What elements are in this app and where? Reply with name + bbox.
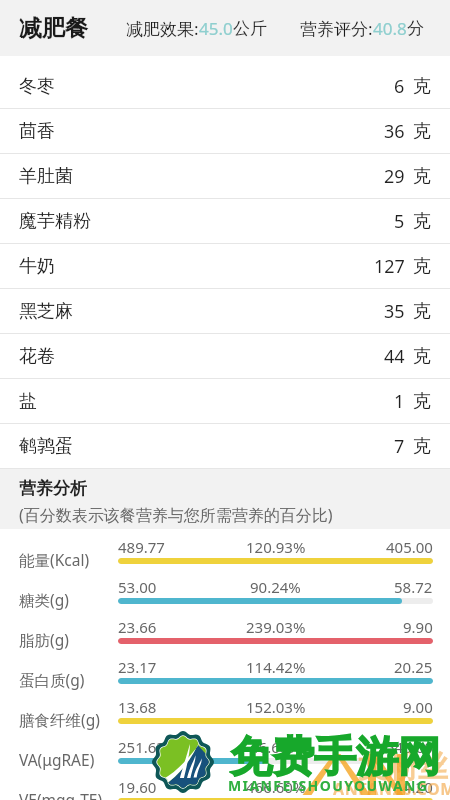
button[interactable]: 冬枣: [0, 64, 450, 108]
staticText: 魔芋精粉: [19, 210, 91, 233]
staticText: 黑芝麻: [19, 300, 73, 323]
staticText: (百分数表示该餐营养与您所需营养的百分比): [19, 504, 333, 526]
staticText: ANFAN20.COM: [333, 778, 450, 800]
staticText: 489.77: [118, 537, 165, 557]
staticText: 466.60%: [246, 777, 306, 797]
button[interactable]: 羊肚菌: [0, 154, 450, 198]
staticText: 牛奶: [19, 255, 55, 278]
button[interactable]: 盐: [0, 379, 450, 423]
staticText: 克: [413, 390, 431, 413]
staticText: 茴香: [19, 120, 55, 143]
staticText: 免费手游网: [230, 731, 440, 784]
staticText: 减肥餐: [19, 14, 88, 43]
staticText: 膳食纤维(g): [19, 709, 100, 730]
staticText: MIANFEISHOUYOUWANG: [228, 776, 429, 795]
staticText: 53.00: [118, 577, 157, 597]
staticText: 克: [413, 75, 431, 98]
staticText: 蛋白质(g): [19, 669, 85, 690]
staticText: 分: [407, 18, 424, 39]
staticText: 540.00: [386, 737, 433, 757]
staticText: 营养分析: [19, 478, 87, 499]
staticText: 盐: [19, 390, 37, 413]
staticText: 251.63: [118, 737, 165, 757]
staticText: 35: [384, 299, 405, 324]
staticText: 克: [413, 345, 431, 368]
staticText: 文粉丝: [358, 748, 448, 786]
staticText: 45.0: [199, 17, 233, 40]
staticText: 减肥效果:: [126, 17, 199, 40]
button[interactable]: 魔芋精粉: [0, 199, 450, 243]
staticText: 23.66: [118, 617, 157, 637]
staticText: 4.20: [403, 777, 433, 797]
staticText: 克: [413, 435, 431, 458]
staticText: 9.00: [403, 697, 433, 717]
staticText: 1: [394, 389, 405, 414]
staticText: 克: [413, 120, 431, 143]
staticText: 239.03%: [246, 617, 306, 637]
staticText: 58.72: [394, 577, 433, 597]
staticText: 羊肚菌: [19, 165, 73, 188]
staticText: 20.25: [394, 657, 433, 677]
button[interactable]: 牛奶: [0, 244, 450, 288]
staticText: 公斤: [233, 18, 267, 39]
button[interactable]: 黑芝麻: [0, 289, 450, 333]
staticText: 克: [413, 300, 431, 323]
staticText: 糖类(g): [19, 589, 69, 610]
staticText: 9.90: [403, 617, 433, 637]
button[interactable]: 鹌鹑蛋: [0, 424, 450, 468]
staticText: 152.03%: [246, 697, 306, 717]
staticText: 36: [384, 119, 405, 144]
staticText: VA(μgRAE): [19, 749, 95, 770]
staticText: 114.42%: [246, 657, 306, 677]
staticText: 13.68: [118, 697, 157, 717]
staticText: 90.24%: [250, 577, 301, 597]
staticText: 克: [413, 255, 431, 278]
staticText: 克: [413, 210, 431, 233]
staticText: 7: [394, 434, 405, 459]
staticText: 花卷: [19, 345, 55, 368]
staticText: VE(mgα-TE): [19, 789, 103, 800]
staticText: 5: [394, 209, 405, 234]
staticText: 19.60: [118, 777, 157, 797]
staticText: 鹌鹑蛋: [19, 435, 73, 458]
button[interactable]: 花卷: [0, 334, 450, 378]
staticText: 23.17: [118, 657, 157, 677]
staticText: 冬枣: [19, 75, 55, 98]
button[interactable]: 茴香: [0, 109, 450, 153]
staticText: 44: [384, 344, 405, 369]
staticText: 40.8: [373, 17, 407, 40]
staticText: 6: [394, 74, 405, 99]
staticText: 46.60%: [250, 737, 301, 757]
staticText: 克: [413, 165, 431, 188]
staticText: 脂肪(g): [19, 629, 69, 650]
staticText: 营养评分:: [300, 17, 373, 40]
staticText: 405.00: [386, 537, 433, 557]
staticText: 能量(Kcal): [19, 549, 90, 570]
staticText: 120.93%: [246, 537, 306, 557]
staticText: 29: [384, 164, 405, 189]
staticText: 127: [374, 254, 405, 279]
